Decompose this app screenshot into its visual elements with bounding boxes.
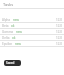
staticText: 12.0 [56,30,62,34]
button[interactable]: Undo action [4,60,21,66]
staticText: Beta [2,24,9,28]
staticText: 12.0 [56,42,62,46]
button[interactable]: Epsilon [2,41,62,46]
staticText: Alpha [2,18,11,22]
staticText: ok [12,36,16,40]
button[interactable]: Alpha [2,17,62,22]
staticText: Epsilon [2,42,13,46]
staticText: Delta [2,36,10,40]
staticText: 12.0 [56,24,62,28]
staticText: Saved [6,61,15,65]
staticText: new [16,30,22,34]
staticText: ok [11,24,15,28]
button[interactable]: Tasks [0,0,64,8]
staticText: 12.0 [56,36,62,40]
staticText: Gamma [2,30,14,34]
staticText: new [15,42,21,46]
button[interactable]: Delta [2,35,62,40]
button[interactable]: Beta [2,23,62,28]
staticText: 12.0 [56,18,62,22]
staticText: Tasks [3,2,14,7]
button[interactable]: Gamma [2,29,62,34]
staticText: new [13,18,19,22]
